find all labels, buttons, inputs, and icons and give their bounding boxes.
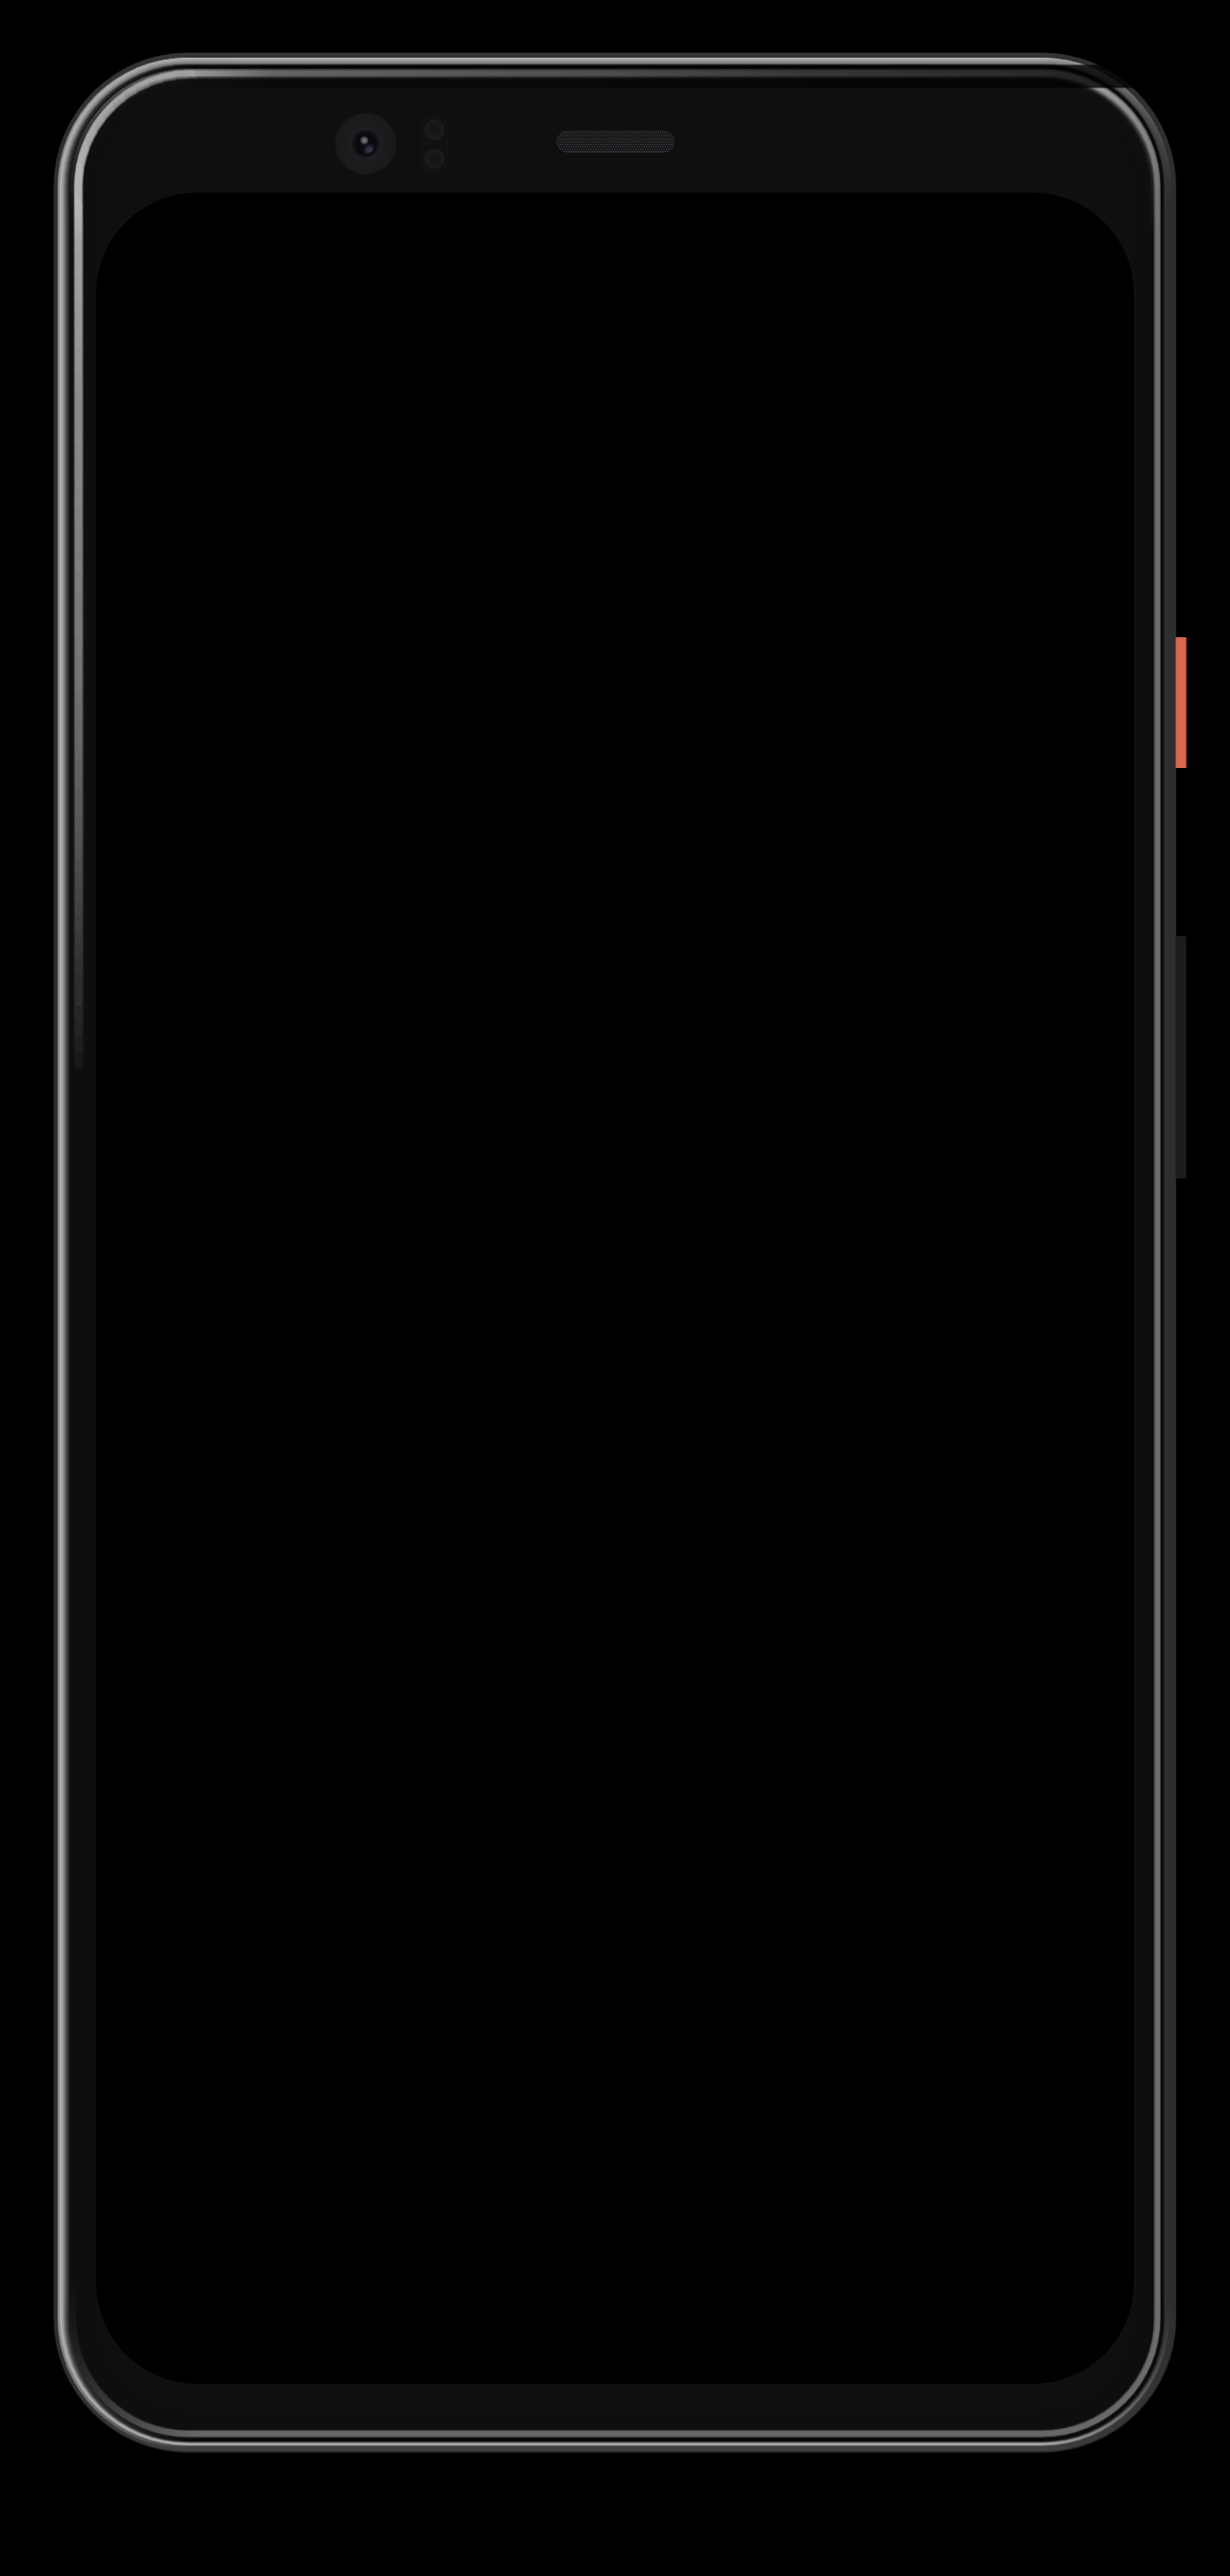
other: Pixel phone device mockup, screen off [0,0,1230,2576]
